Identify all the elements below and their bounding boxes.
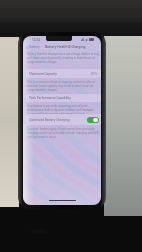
staticText: This is a measure of battery capacity re… [27, 80, 100, 92]
button[interactable]: Peak Performance Capability [26, 94, 101, 102]
button[interactable]: Optimized Battery Charging toggle [87, 117, 99, 123]
staticText: 12:34 [32, 38, 41, 42]
staticText: Battery Health & Charging [45, 45, 86, 49]
staticText: 87% [91, 72, 98, 76]
staticText: Your battery is currently supporting nor… [27, 104, 100, 116]
button[interactable]: Maximum Capacity [26, 69, 101, 78]
staticText: Optimized Battery Charging [29, 118, 70, 122]
button[interactable]: Battery [25, 44, 41, 50]
button[interactable]: Optimized Battery Charging [26, 114, 101, 125]
staticText: Maximum Capacity [29, 72, 57, 76]
staticText: Battery health is displayed as a percent… [27, 52, 100, 64]
staticText: To reduce battery aging, iPhone learns f… [27, 127, 100, 139]
staticText: Battery [29, 45, 40, 49]
staticText: Peak Performance Capability [29, 96, 71, 100]
